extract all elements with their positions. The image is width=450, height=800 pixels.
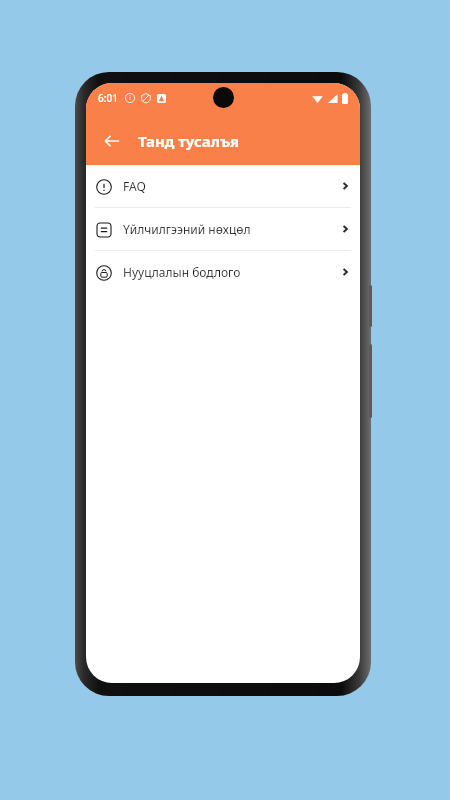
button[interactable]: Back — [92, 121, 132, 161]
staticText: FAQ — [123, 178, 146, 194]
staticText: Үйлчилгээний нөхцөл — [123, 221, 251, 237]
staticText: Танд тусалъя — [138, 131, 239, 151]
button[interactable]: Үйлчилгээний нөхцөл — [86, 208, 360, 250]
button[interactable]: FAQ — [86, 165, 360, 207]
staticText: 6:01 — [98, 91, 118, 105]
staticText: Нууцлалын бодлого — [123, 264, 241, 280]
button[interactable]: Нууцлалын бодлого — [86, 251, 360, 293]
